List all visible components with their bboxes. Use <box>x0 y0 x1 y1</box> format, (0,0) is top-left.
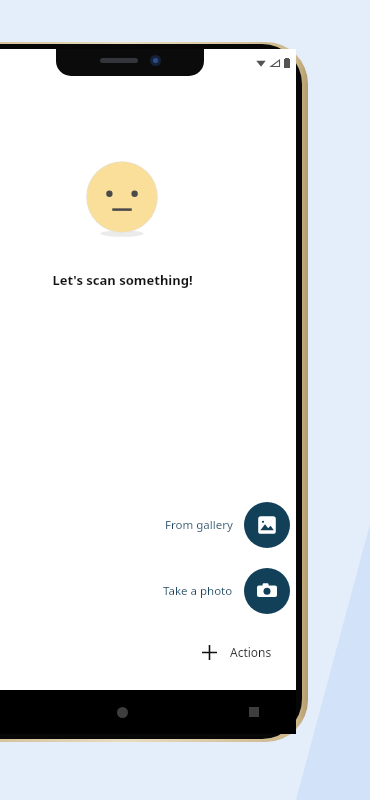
button[interactable]: Actions <box>186 632 290 672</box>
button[interactable]: From gallery <box>165 502 296 548</box>
staticText: From gallery <box>165 517 233 533</box>
staticText: Let's scan something! <box>52 271 193 289</box>
button[interactable]: Recent apps <box>240 698 268 726</box>
other: Take a photo <box>244 568 290 614</box>
button[interactable]: Take a photo <box>163 568 296 614</box>
staticText: Take a photo <box>163 583 233 599</box>
other: Pick from gallery <box>244 502 290 548</box>
button[interactable]: Home <box>108 698 136 726</box>
staticText: Actions <box>230 644 272 660</box>
